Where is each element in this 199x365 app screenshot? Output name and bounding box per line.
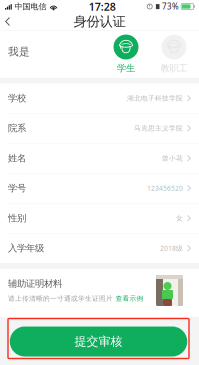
staticText: 2018级 — [160, 244, 183, 253]
button[interactable]: Back — [0, 13, 20, 30]
button[interactable]: 提交审核 — [10, 326, 187, 356]
staticText: 查看示例 — [115, 294, 143, 303]
button[interactable]: 学校 — [0, 83, 199, 113]
staticText: 院系 — [8, 122, 26, 134]
staticText: 学生 — [117, 62, 135, 74]
staticText: 提交审核 — [74, 334, 122, 349]
button[interactable]: 院系 — [0, 113, 199, 143]
button[interactable]: 查看示例 — [113, 294, 143, 303]
staticText: 中国电信 — [14, 2, 46, 11]
staticText: 马克思主义学院 — [134, 124, 183, 132]
staticText: 女 — [176, 214, 183, 222]
staticText: 湖北电子科技学院 — [127, 94, 183, 102]
staticText: 学校 — [8, 92, 26, 104]
staticText: 我是 — [8, 45, 30, 58]
button[interactable]: 教职工 — [154, 34, 194, 74]
staticText: 学号 — [8, 182, 26, 194]
staticText: 姓名 — [8, 152, 26, 164]
button[interactable]: 入学年级 — [0, 233, 199, 263]
button[interactable]: 学号 — [0, 173, 199, 203]
button[interactable]: 性别 — [0, 203, 199, 233]
staticText: 入学年级 — [8, 242, 44, 254]
staticText: 教职工 — [160, 62, 187, 74]
staticText: 曾小花 — [162, 154, 183, 162]
staticText: 请上传清晰的一寸通或学生证照片 — [8, 294, 113, 303]
button[interactable]: Upload photo — [156, 275, 183, 306]
staticText: 辅助证明材料 — [8, 278, 62, 289]
staticText: 73% — [162, 1, 179, 12]
staticText: 123456520 — [147, 184, 183, 193]
button[interactable]: 学生 — [106, 34, 146, 74]
staticText: 17:28 — [89, 0, 116, 14]
staticText: 性别 — [8, 212, 26, 224]
staticText: 身份认证 — [73, 13, 125, 30]
button[interactable]: 姓名 — [0, 143, 199, 173]
